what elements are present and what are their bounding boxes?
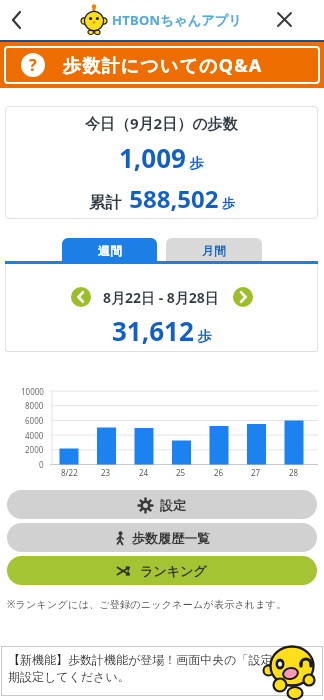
staticText: 0 (39, 459, 44, 470)
staticText: 今日（9月2日）の歩数 (85, 113, 238, 133)
staticText: 2000 (25, 444, 44, 455)
staticText: 6000 (25, 415, 44, 426)
button[interactable] (233, 287, 253, 307)
staticText: 28 (289, 467, 299, 478)
staticText: 26 (214, 467, 224, 478)
staticText: 設定 (160, 497, 186, 513)
staticText: 24 (139, 467, 149, 478)
staticText: ランキング (140, 563, 207, 579)
staticText: 8/22 (61, 467, 78, 478)
button[interactable]: 歩数履歴一覧 (7, 523, 317, 552)
staticText: 期設定してください。 (8, 669, 130, 684)
staticText: 歩数履歴一覧 (132, 530, 210, 546)
staticText: 1,009 歩 (119, 140, 204, 175)
staticText: 27 (251, 467, 261, 478)
button[interactable]: ランキング (7, 556, 317, 585)
staticText: 週間 (98, 243, 122, 258)
staticText: ? (29, 54, 37, 76)
staticText: 25 (176, 467, 186, 478)
button[interactable] (6, 8, 30, 32)
button[interactable]: 月間 (166, 238, 262, 262)
staticText: 【新機能】歩数計機能が登場！画面中央の「設定」で初 (8, 652, 309, 667)
button[interactable] (272, 8, 296, 32)
staticText: 8000 (25, 400, 44, 411)
staticText: 月間 (202, 243, 226, 258)
button[interactable]: 【新機能】歩数計機能が登場！画面中央の「設定」で初 (1, 646, 323, 696)
staticText: 8月22日 - 8月28日 (103, 288, 219, 307)
staticText: 31,612 歩 (112, 313, 212, 348)
staticText: 10000 (21, 386, 44, 397)
staticText: HTBONちゃんアプリ (112, 11, 243, 29)
staticText: 歩数計についてのQ&A (63, 53, 263, 78)
staticText: 累計 588,502 歩 (89, 182, 235, 215)
staticText: 23 (101, 467, 111, 478)
button[interactable]: 週間 (62, 238, 157, 262)
button[interactable]: 設定 (7, 490, 317, 519)
staticText: ※ランキングには、ご登録のニックネームが表示されます。 (7, 597, 287, 611)
button[interactable]: ? (0, 42, 324, 88)
staticText: 4000 (25, 430, 44, 441)
button[interactable] (71, 287, 91, 307)
